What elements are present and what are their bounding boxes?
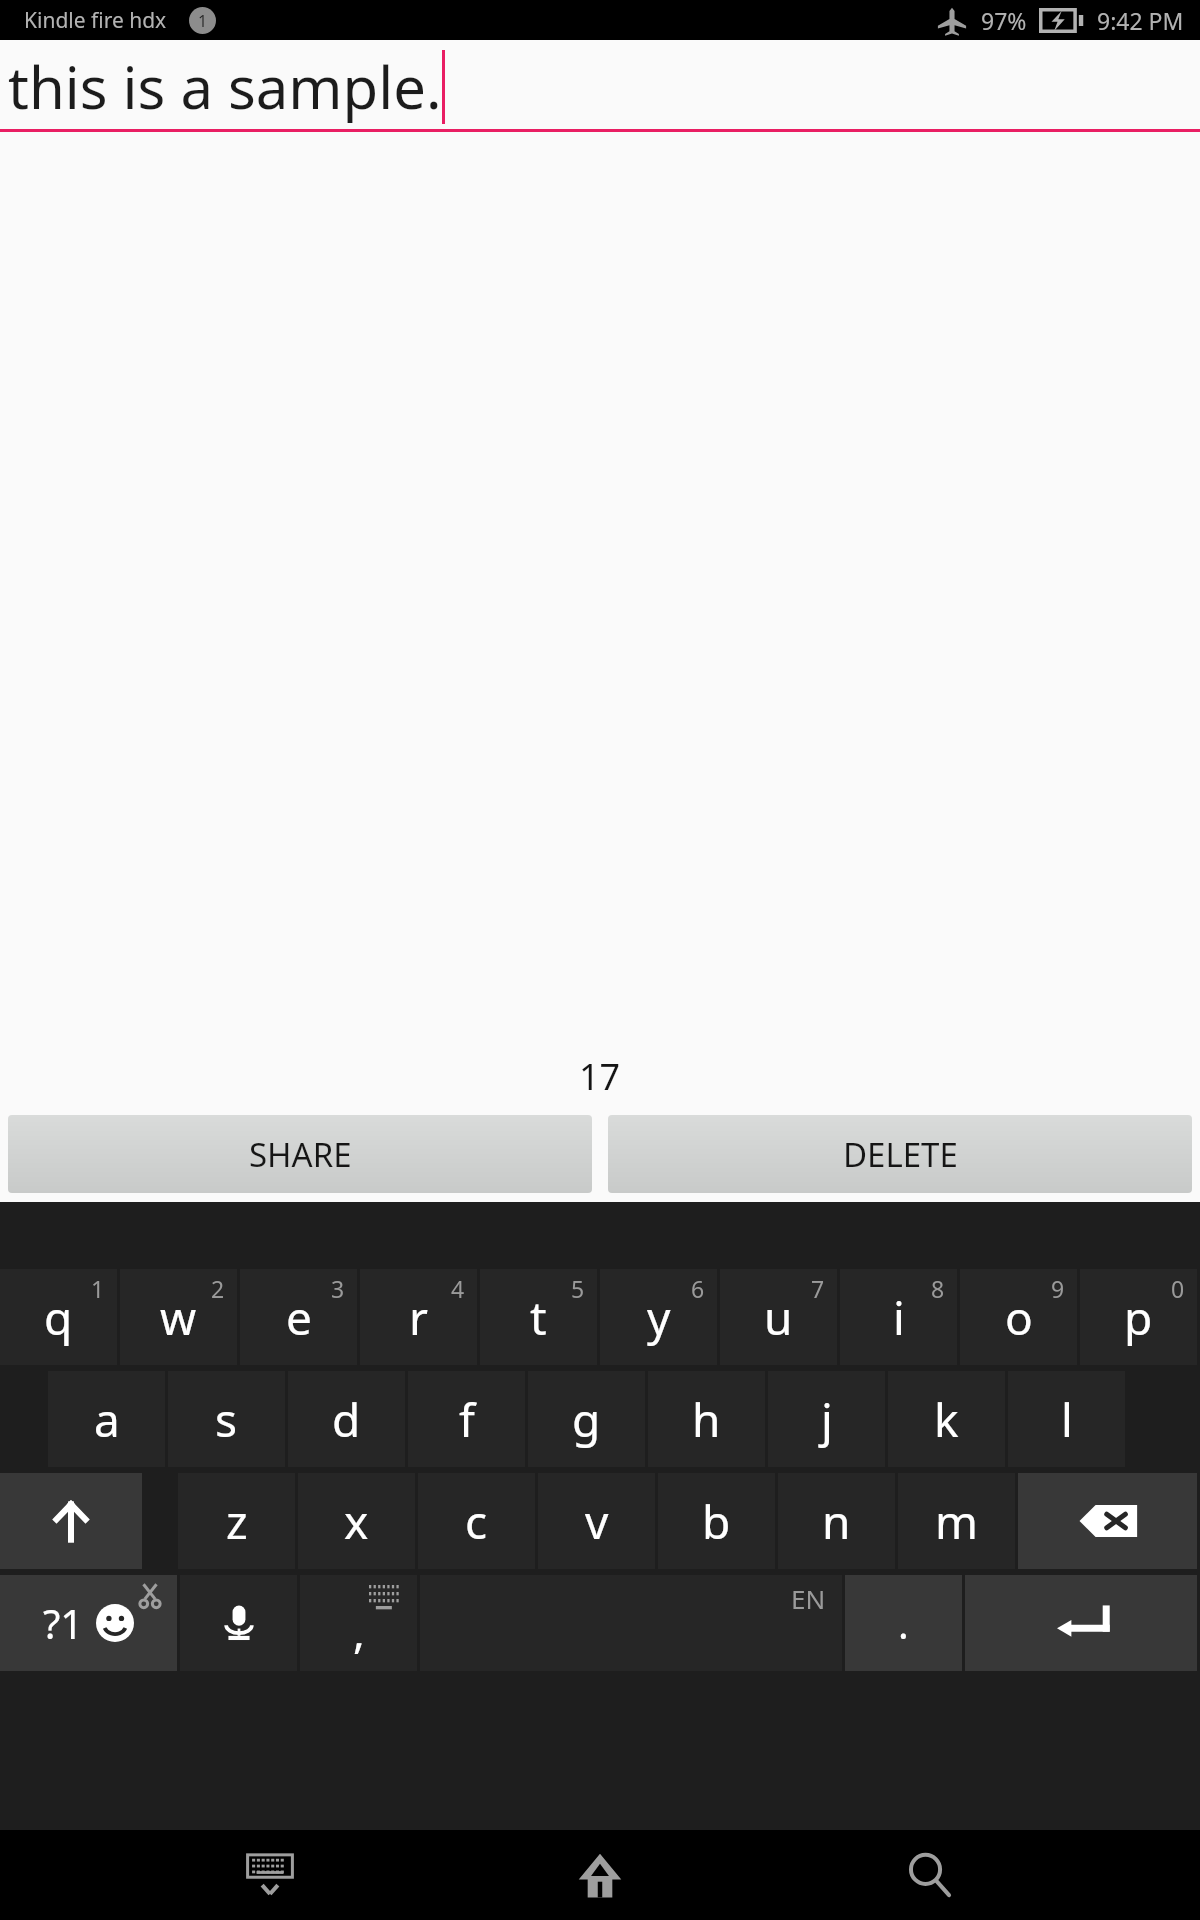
button[interactable]: DELETE bbox=[608, 1115, 1192, 1193]
staticText: 9 bbox=[1051, 1273, 1065, 1304]
staticText: n bbox=[822, 1490, 851, 1553]
staticText: k bbox=[934, 1388, 959, 1451]
button[interactable]: Home bbox=[540, 1830, 660, 1920]
staticText: EN bbox=[791, 1581, 826, 1616]
button[interactable]: l bbox=[1008, 1371, 1125, 1467]
button[interactable]: t bbox=[480, 1269, 597, 1365]
button[interactable]: w bbox=[120, 1269, 237, 1365]
staticText: 3 bbox=[331, 1273, 345, 1304]
staticText: q bbox=[44, 1286, 73, 1349]
button[interactable]: Voice input bbox=[180, 1575, 297, 1671]
staticText: this is a sample. bbox=[8, 47, 442, 126]
staticText: o bbox=[1005, 1286, 1033, 1349]
button[interactable]: i bbox=[840, 1269, 957, 1365]
button[interactable]: u bbox=[720, 1269, 837, 1365]
button[interactable]: SHARE bbox=[8, 1115, 592, 1193]
staticText: 5 bbox=[571, 1273, 585, 1304]
staticText: 1 bbox=[198, 10, 208, 32]
staticText: SHARE bbox=[249, 1132, 352, 1177]
button[interactable]: . bbox=[845, 1575, 962, 1671]
staticText: 6 bbox=[691, 1273, 705, 1304]
button[interactable]: n bbox=[778, 1473, 895, 1569]
staticText: u bbox=[764, 1286, 793, 1349]
staticText: s bbox=[215, 1388, 238, 1451]
staticText: 2 bbox=[211, 1273, 225, 1304]
staticText: p bbox=[1124, 1286, 1153, 1349]
button[interactable]: d bbox=[288, 1371, 405, 1467]
staticText: 97% bbox=[981, 5, 1027, 36]
staticText: i bbox=[893, 1286, 905, 1349]
button[interactable]: j bbox=[768, 1371, 885, 1467]
staticText: , bbox=[353, 1601, 365, 1661]
button[interactable]: o bbox=[960, 1269, 1077, 1365]
staticText: b bbox=[702, 1490, 731, 1553]
button[interactable]: c bbox=[418, 1473, 535, 1569]
button[interactable]: Search bbox=[870, 1830, 990, 1920]
staticText: l bbox=[1061, 1388, 1073, 1451]
button[interactable]: p bbox=[1080, 1269, 1197, 1365]
button[interactable]: h bbox=[648, 1371, 765, 1467]
staticText: 1 bbox=[91, 1273, 105, 1304]
button[interactable]: z bbox=[178, 1473, 295, 1569]
staticText: DELETE bbox=[843, 1132, 958, 1177]
button[interactable]: g bbox=[528, 1371, 645, 1467]
staticText: c bbox=[465, 1490, 488, 1553]
button[interactable]: r bbox=[360, 1269, 477, 1365]
button[interactable]: v bbox=[538, 1473, 655, 1569]
button[interactable]: f bbox=[408, 1371, 525, 1467]
button[interactable]: x bbox=[298, 1473, 415, 1569]
button[interactable]: a bbox=[48, 1371, 165, 1467]
staticText: 9:42 PM bbox=[1097, 5, 1184, 36]
button[interactable]: Space bbox=[420, 1575, 842, 1671]
staticText: ?1 bbox=[43, 1596, 84, 1650]
staticText: 0 bbox=[1171, 1273, 1185, 1304]
staticText: a bbox=[94, 1388, 120, 1451]
staticText: d bbox=[332, 1388, 361, 1451]
button[interactable]: Symbols and emoji bbox=[0, 1575, 177, 1671]
button[interactable]: Hide keyboard bbox=[210, 1830, 330, 1920]
staticText: Kindle fire hdx bbox=[24, 6, 167, 35]
staticText: j bbox=[821, 1388, 833, 1451]
staticText: m bbox=[935, 1490, 979, 1553]
button[interactable]: m bbox=[898, 1473, 1015, 1569]
staticText: w bbox=[160, 1286, 197, 1349]
button[interactable]: Backspace bbox=[1018, 1473, 1197, 1569]
button[interactable]: this is a sample. bbox=[0, 40, 1200, 132]
button[interactable]: s bbox=[168, 1371, 285, 1467]
staticText: 7 bbox=[811, 1273, 825, 1304]
staticText: 4 bbox=[451, 1273, 465, 1304]
button[interactable]: k bbox=[888, 1371, 1005, 1467]
button[interactable]: y bbox=[600, 1269, 717, 1365]
staticText: y bbox=[647, 1286, 671, 1349]
button[interactable]: e bbox=[240, 1269, 357, 1365]
staticText: f bbox=[459, 1388, 475, 1451]
button[interactable]: Enter bbox=[965, 1575, 1197, 1671]
staticText: r bbox=[409, 1286, 428, 1349]
staticText: 17 bbox=[579, 1052, 621, 1101]
staticText: z bbox=[226, 1490, 248, 1553]
staticText: h bbox=[692, 1388, 721, 1451]
button[interactable]: q bbox=[0, 1269, 117, 1365]
staticText: t bbox=[530, 1286, 547, 1349]
staticText: g bbox=[572, 1388, 601, 1451]
staticText: v bbox=[585, 1490, 609, 1553]
button[interactable]: Shift bbox=[0, 1473, 142, 1569]
staticText: 8 bbox=[931, 1273, 945, 1304]
staticText: x bbox=[344, 1490, 369, 1553]
staticText: . bbox=[898, 1596, 909, 1650]
staticText: e bbox=[286, 1286, 312, 1349]
button[interactable]: Comma bbox=[300, 1575, 417, 1671]
button[interactable]: b bbox=[658, 1473, 775, 1569]
